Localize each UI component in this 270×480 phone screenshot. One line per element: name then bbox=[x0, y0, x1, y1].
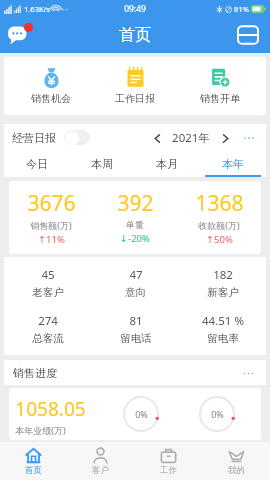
button[interactable]: 392 bbox=[93, 189, 177, 245]
button[interactable]: 81 bbox=[92, 313, 179, 345]
staticText: 81% bbox=[234, 4, 249, 14]
button[interactable]: Previous year bbox=[148, 129, 166, 147]
staticText: ··· bbox=[62, 4, 69, 14]
staticText: 销售进度 bbox=[13, 366, 57, 380]
button[interactable]: 工作 bbox=[134, 442, 202, 480]
staticText: ↓-20% bbox=[120, 232, 150, 245]
button[interactable]: More options bbox=[239, 364, 257, 382]
staticText: 总客流 bbox=[32, 332, 64, 345]
button[interactable]: 本周 bbox=[69, 151, 134, 177]
staticText: 81 bbox=[129, 313, 143, 329]
staticText: ↑50% bbox=[206, 233, 233, 246]
button[interactable]: 1368 bbox=[177, 189, 261, 246]
staticText: 首页 bbox=[119, 25, 151, 45]
staticText: 首页 bbox=[25, 465, 42, 476]
button[interactable]: 客户 bbox=[67, 442, 134, 480]
staticText: 47 bbox=[129, 267, 143, 283]
staticText: 单量 bbox=[126, 219, 144, 230]
staticText: 本年 bbox=[222, 157, 244, 171]
staticText: 工作日报 bbox=[115, 92, 155, 105]
staticText: 销售开单 bbox=[200, 92, 240, 105]
staticText: 留电率 bbox=[207, 332, 239, 345]
button[interactable]: Messages bbox=[8, 22, 34, 48]
button[interactable]: Next year bbox=[216, 129, 234, 147]
staticText: 392 bbox=[117, 189, 154, 218]
staticText: 1058.05 bbox=[15, 396, 86, 422]
staticText: 收款额(万) bbox=[198, 219, 240, 231]
button[interactable]: 我的 bbox=[202, 442, 270, 480]
button[interactable]: Scan bbox=[234, 21, 262, 49]
staticText: 45 bbox=[41, 267, 55, 283]
staticText: 本月 bbox=[156, 157, 178, 171]
staticText: 今日 bbox=[26, 157, 48, 171]
button[interactable]: 本年 bbox=[200, 151, 266, 177]
staticText: 老客户 bbox=[32, 286, 64, 299]
button[interactable]: 销售机会 bbox=[13, 65, 89, 107]
staticText: ↑11% bbox=[38, 233, 65, 246]
staticText: 本年业绩(万) bbox=[15, 424, 66, 436]
staticText: 09:49 bbox=[124, 3, 146, 15]
staticText: 182 bbox=[213, 267, 233, 283]
staticText: 我的 bbox=[228, 465, 245, 476]
staticText: 销售机会 bbox=[31, 92, 71, 105]
staticText: 工作 bbox=[160, 465, 177, 476]
staticText: 本周 bbox=[91, 157, 113, 171]
staticText: 0% bbox=[211, 408, 224, 420]
button[interactable]: 首页 bbox=[0, 442, 67, 480]
staticText: 留电话 bbox=[120, 332, 152, 345]
button[interactable]: 47 bbox=[92, 267, 179, 299]
button[interactable]: Toggle bbox=[64, 130, 90, 145]
button[interactable]: 工作日报 bbox=[97, 65, 173, 107]
button[interactable]: 本月 bbox=[134, 151, 200, 177]
staticText: 1368 bbox=[195, 189, 244, 218]
staticText: 经营日报 bbox=[12, 131, 56, 145]
staticText: 3676 bbox=[27, 189, 76, 218]
staticText: 44.51 % bbox=[202, 313, 244, 329]
staticText: 1.63K/s bbox=[24, 4, 50, 14]
button[interactable]: 45 bbox=[4, 267, 92, 299]
staticText: 新客户 bbox=[207, 286, 239, 299]
button[interactable]: 274 bbox=[4, 313, 92, 345]
staticText: 0% bbox=[135, 408, 148, 420]
staticText: 2021年 bbox=[172, 130, 210, 146]
staticText: 销售额(万) bbox=[30, 219, 72, 231]
button[interactable]: 44.51 % bbox=[179, 313, 266, 345]
button[interactable]: More options bbox=[240, 129, 258, 147]
button[interactable]: 今日 bbox=[4, 151, 69, 177]
staticText: 客户 bbox=[92, 465, 109, 476]
button[interactable]: 销售开单 bbox=[182, 65, 258, 107]
button[interactable]: 182 bbox=[179, 267, 266, 299]
button[interactable]: 3676 bbox=[9, 189, 93, 246]
staticText: 意向 bbox=[125, 286, 146, 299]
staticText: 274 bbox=[38, 313, 58, 329]
